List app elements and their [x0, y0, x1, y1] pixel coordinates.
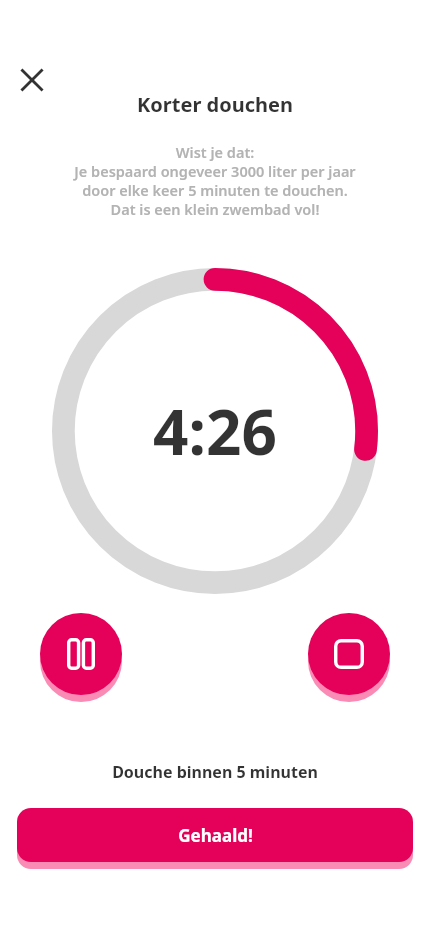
staticText: Douche binnen 5 minuten [112, 761, 318, 783]
button[interactable]: Gehaald! [17, 808, 413, 869]
staticText: Wist je dat: Je bespaard ongeveer 3000 l… [74, 142, 356, 219]
button[interactable]: Close [10, 58, 54, 102]
staticText: Gehaald! [178, 824, 253, 847]
button[interactable]: Stop [308, 613, 390, 701]
button[interactable]: Pause [40, 613, 122, 701]
staticText: Korter douchen [137, 91, 293, 118]
staticText: 4:26 [153, 389, 277, 473]
